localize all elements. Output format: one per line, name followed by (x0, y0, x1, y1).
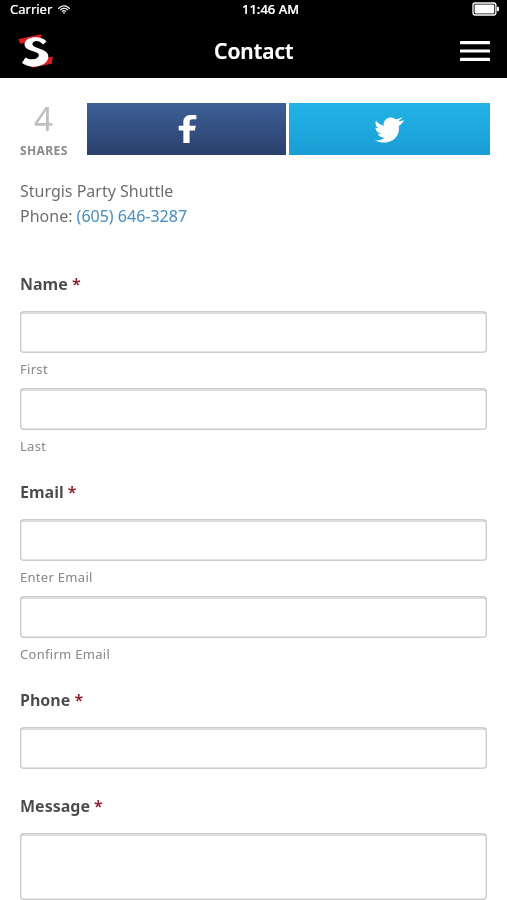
button[interactable]: Phone: (605) 646-3287 (20, 205, 188, 227)
button[interactable] (20, 388, 487, 430)
button[interactable]: Share on Facebook (87, 103, 286, 155)
staticText: SHARES (20, 142, 68, 158)
staticText: First (20, 360, 48, 378)
staticText: Carrier (10, 0, 53, 18)
staticText: Enter Email (20, 568, 93, 586)
button[interactable] (20, 596, 487, 638)
button[interactable]: Share on Twitter (289, 103, 490, 155)
button[interactable] (20, 311, 487, 353)
button[interactable]: Home (14, 31, 58, 71)
staticText: Email * (20, 481, 77, 503)
staticText: Confirm Email (20, 645, 111, 663)
staticText: Message * (20, 795, 103, 817)
staticText: Sturgis Party Shuttle (20, 180, 174, 202)
staticText: 11:46 AM (242, 0, 300, 18)
button[interactable] (20, 727, 487, 769)
staticText: Contact (214, 37, 294, 66)
staticText: Name * (20, 273, 81, 295)
button[interactable]: Menu (457, 33, 493, 69)
button[interactable] (20, 833, 487, 900)
staticText: 4 (34, 96, 53, 141)
staticText: Phone * (20, 689, 84, 711)
staticText: Last (20, 437, 47, 455)
button[interactable] (20, 519, 487, 561)
